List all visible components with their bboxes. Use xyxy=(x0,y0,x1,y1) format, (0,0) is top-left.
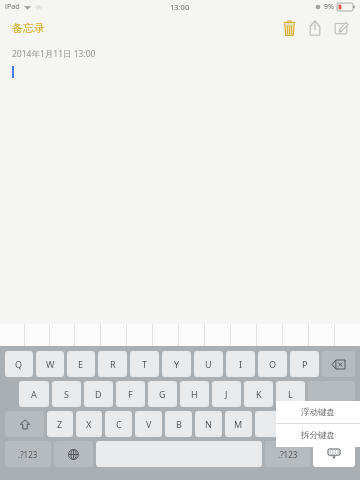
button[interactable]: C xyxy=(105,411,132,437)
staticText: X xyxy=(86,418,92,430)
button[interactable]: 浮动键盘 xyxy=(276,401,360,423)
staticText: 13:00 xyxy=(170,2,190,12)
button[interactable]: U xyxy=(194,351,223,377)
staticText: J xyxy=(225,388,228,400)
staticText: K xyxy=(256,388,262,400)
button[interactable]: Y xyxy=(162,351,191,377)
staticText: iPad xyxy=(5,2,20,12)
button[interactable]: P xyxy=(290,351,319,377)
button[interactable]: M xyxy=(225,411,252,437)
button[interactable]: H xyxy=(180,381,209,407)
staticText: L xyxy=(288,388,293,400)
staticText: W xyxy=(46,358,55,370)
button[interactable]: Z xyxy=(47,411,73,437)
button[interactable]: Shift xyxy=(315,411,355,437)
button[interactable]: Share xyxy=(302,15,328,41)
button[interactable]: E xyxy=(67,351,95,377)
staticText: E xyxy=(78,358,84,370)
staticText: O xyxy=(269,358,277,370)
button[interactable]: A xyxy=(19,381,49,407)
button[interactable]: Change keyboard xyxy=(54,441,93,467)
staticText: R xyxy=(110,358,116,370)
button[interactable]: V xyxy=(135,411,162,437)
staticText: Q xyxy=(15,358,23,370)
staticText: .?123 xyxy=(18,449,38,460)
button[interactable]: Delete xyxy=(276,15,302,41)
button[interactable]: New note xyxy=(328,15,354,41)
staticText: I xyxy=(239,358,243,370)
button[interactable]: X xyxy=(76,411,102,437)
staticText: Y xyxy=(174,358,180,370)
button[interactable]: Backspace xyxy=(322,351,355,377)
button[interactable]: J xyxy=(212,381,241,407)
button[interactable]: N xyxy=(195,411,222,437)
button[interactable]: Shift xyxy=(5,411,44,437)
button[interactable]: .?123 xyxy=(265,441,310,467)
button[interactable]: K xyxy=(244,381,273,407)
staticText: V xyxy=(146,418,152,430)
staticText: P xyxy=(302,358,308,370)
button[interactable]: R xyxy=(98,351,127,377)
staticText: G xyxy=(159,388,166,400)
staticText: H xyxy=(191,388,198,400)
button[interactable]: I xyxy=(226,351,255,377)
button[interactable]: L xyxy=(276,381,305,407)
staticText: F xyxy=(128,388,133,400)
staticText: 2014年1月11日 13:00 xyxy=(12,48,96,60)
staticText: B xyxy=(176,418,182,430)
staticText: C xyxy=(116,418,122,430)
staticText: N xyxy=(205,418,212,430)
staticText: A xyxy=(31,388,37,400)
button[interactable]: 拆分键盘 xyxy=(276,424,360,447)
button[interactable]: .?123 xyxy=(5,441,51,467)
staticText: 拆分键盘 xyxy=(301,430,335,441)
button[interactable]: F xyxy=(116,381,145,407)
button[interactable]: Comma xyxy=(255,411,282,437)
button[interactable]: G xyxy=(148,381,177,407)
staticText: D xyxy=(95,388,102,400)
button[interactable]: W xyxy=(36,351,64,377)
button[interactable]: B xyxy=(165,411,192,437)
button[interactable]: S xyxy=(52,381,81,407)
button[interactable]: Hide keyboard xyxy=(313,441,355,467)
button[interactable]: Period xyxy=(285,411,312,437)
staticText: Z xyxy=(57,418,63,430)
staticText: M xyxy=(234,418,243,430)
button[interactable]: O xyxy=(258,351,287,377)
button[interactable]: Return xyxy=(308,381,355,407)
staticText: .?123 xyxy=(278,449,298,460)
button[interactable]: Q xyxy=(5,351,33,377)
button[interactable]: T xyxy=(130,351,159,377)
staticText: 浮动键盘 xyxy=(301,407,335,418)
button[interactable]: 备忘录 xyxy=(12,21,45,35)
staticText: U xyxy=(205,358,212,370)
staticText: T xyxy=(142,358,148,370)
button[interactable]: D xyxy=(84,381,113,407)
staticText: S xyxy=(64,388,69,400)
staticText: 9% xyxy=(324,2,334,12)
